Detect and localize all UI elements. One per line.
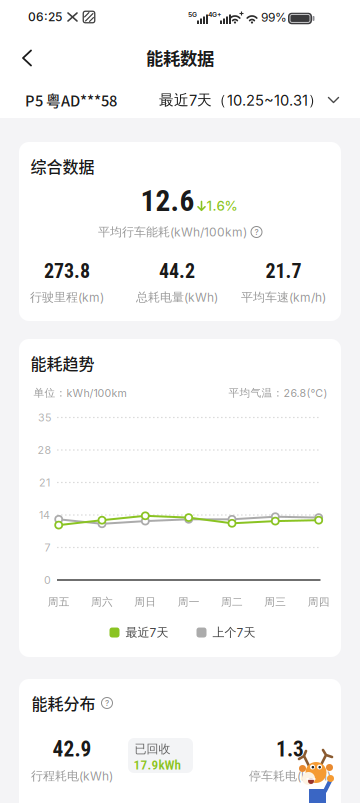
staticText: 35	[38, 411, 51, 424]
button[interactable]: Back	[11, 39, 42, 76]
staticText: 周六	[91, 595, 113, 608]
staticText: ?	[254, 227, 258, 237]
staticText: 5G	[188, 11, 197, 18]
staticText: 周三	[264, 595, 286, 608]
staticText: 28	[37, 444, 51, 456]
staticText: 周二	[221, 595, 243, 608]
staticText: 周五	[48, 595, 70, 608]
staticText: 能耗趋势	[30, 351, 94, 375]
staticText: 平均行车能耗(kWh/100km)	[98, 225, 247, 239]
staticText: 273.8	[44, 259, 90, 283]
staticText: 14	[39, 509, 50, 521]
staticText: 1.3	[276, 737, 304, 762]
staticText: 行程耗电(kWh)	[31, 769, 113, 783]
staticText: 最近7天（10.25~10.31）	[159, 91, 323, 109]
staticText: P5 粤AD***58	[25, 89, 117, 111]
button[interactable]: Help	[251, 226, 262, 237]
button[interactable]: 最近7天（10.25~10.31）	[159, 91, 339, 109]
staticText: ?	[105, 698, 109, 708]
staticText: 周四	[308, 595, 330, 608]
staticText: 0	[44, 574, 51, 586]
staticText: 行驶里程(km)	[30, 290, 104, 304]
staticText: 最近7天	[125, 625, 168, 640]
staticText: 能耗数据	[146, 45, 214, 70]
staticText: 总耗电量(kWh)	[136, 290, 218, 304]
button[interactable]: Help	[101, 697, 112, 708]
staticText: 99%	[261, 10, 287, 25]
staticText: 06:25	[28, 10, 62, 24]
staticText: 周日	[134, 595, 156, 608]
staticText: 44.2	[159, 259, 195, 283]
staticText: 平均车速(km/h)	[241, 290, 326, 304]
staticText: 21	[39, 476, 50, 489]
staticText: 4G+	[208, 11, 221, 18]
staticText: 单位：kWh/100km	[33, 386, 126, 399]
staticText: 21.7	[265, 259, 301, 283]
staticText: 综合数据	[30, 154, 94, 178]
staticText: 已回收	[134, 742, 170, 756]
staticText: 1.6%	[206, 198, 237, 214]
staticText: 停车耗电(kWh)	[249, 769, 331, 783]
staticText: 17.9kWh	[133, 757, 181, 773]
staticText: 周一	[178, 595, 200, 608]
staticText: 能耗分布	[31, 691, 95, 715]
staticText: 上个7天	[212, 625, 255, 640]
staticText: 42.9	[52, 737, 91, 762]
staticText: 7	[44, 541, 50, 554]
staticText: 12.6	[140, 184, 194, 218]
staticText: 平均气温：26.8(℃)	[228, 386, 327, 399]
